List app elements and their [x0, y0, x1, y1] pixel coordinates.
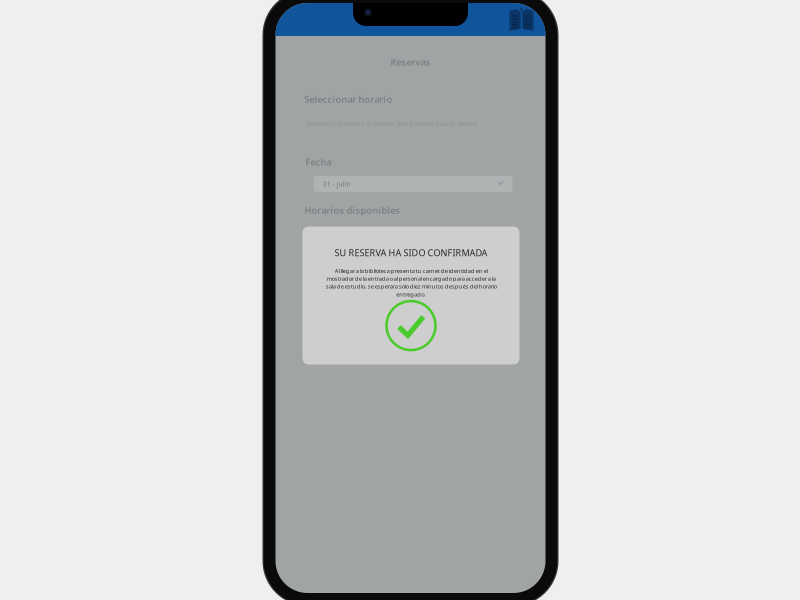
button[interactable]: Biblioteca	[508, 6, 545, 32]
staticText: Selecciona la fecha y el horario que pre…	[305, 119, 478, 128]
button[interactable]: 31 - julio	[313, 176, 512, 192]
staticText: Reservas	[390, 56, 430, 68]
staticText: Horarios disponibles	[304, 204, 400, 216]
staticText: Fecha	[305, 156, 331, 168]
staticText: Al llegar a la biblioteca presenta tu ca…	[325, 267, 496, 298]
staticText: SU RESERVA HA SIDO CONFIRMADA	[334, 246, 487, 259]
staticText: 31 - julio	[322, 179, 350, 188]
staticText: Seleccionar horario	[304, 93, 392, 105]
